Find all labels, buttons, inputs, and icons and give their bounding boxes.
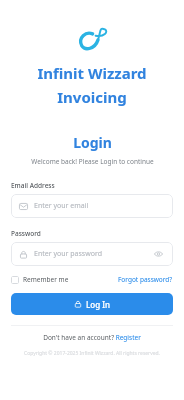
button[interactable]: Show password <box>151 247 165 261</box>
staticText: Email Address <box>11 181 55 190</box>
staticText: Copyright © 2017-2025 Infinit Wizzard. A… <box>24 350 160 357</box>
staticText: Forgot password? <box>118 275 173 284</box>
staticText: Login <box>73 133 112 152</box>
staticText: Don't have an account? Register <box>43 333 141 342</box>
button[interactable]: Enter your password <box>11 242 173 266</box>
button[interactable]: Log In <box>11 293 173 315</box>
button[interactable]: Remember me <box>11 275 69 284</box>
button[interactable]: Enter your email <box>11 194 173 218</box>
staticText: Invoicing <box>57 87 127 107</box>
button[interactable]: Don't have an account? Register <box>0 333 184 342</box>
staticText: Log In <box>86 299 111 310</box>
staticText: Remember me <box>23 275 69 284</box>
staticText: Password <box>11 229 41 238</box>
staticText: Enter your password <box>34 249 151 259</box>
staticText: Enter your email <box>34 201 165 211</box>
staticText: Infinit Wizzard <box>37 63 147 83</box>
staticText: Welcome back! Please Login to continue <box>31 157 154 166</box>
button[interactable]: Forgot password? <box>118 275 173 284</box>
